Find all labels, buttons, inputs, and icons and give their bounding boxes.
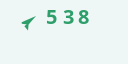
staticText: 3 xyxy=(63,3,75,30)
staticText: 5 xyxy=(46,3,58,30)
staticText: 8 xyxy=(78,3,90,30)
button[interactable]: Send xyxy=(21,14,37,30)
